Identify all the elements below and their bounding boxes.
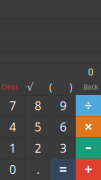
button[interactable]: Equals [50, 159, 76, 180]
staticText: 6 [60, 119, 67, 135]
button[interactable]: Clear [0, 79, 20, 95]
button[interactable]: 1 [0, 137, 25, 159]
staticText: Back [83, 83, 98, 91]
staticText: . [36, 161, 39, 177]
button[interactable]: Square root [20, 79, 40, 95]
button[interactable]: 4 [0, 116, 25, 137]
button[interactable]: 9 [50, 95, 76, 116]
staticText: 5 [34, 119, 41, 135]
button[interactable]: Subtract [76, 137, 101, 159]
button[interactable]: Multiply [76, 116, 101, 137]
staticText: √ [27, 81, 34, 93]
staticText: 3 [60, 140, 67, 156]
button[interactable]: Add [76, 159, 101, 180]
button[interactable]: 5 [25, 116, 50, 137]
staticText: 8 [34, 98, 41, 114]
button[interactable]: Back [81, 79, 101, 95]
staticText: ( [49, 80, 52, 94]
button[interactable]: 0 [0, 159, 25, 180]
staticText: 1 [9, 140, 16, 156]
button[interactable]: 7 [0, 95, 25, 116]
staticText: 4 [9, 119, 16, 135]
staticText: 0 [88, 66, 93, 78]
button[interactable]: Close parenthesis [61, 79, 81, 95]
button[interactable]: 8 [25, 95, 50, 116]
button[interactable]: Divide [76, 95, 101, 116]
button[interactable]: 3 [50, 137, 76, 159]
button[interactable]: 6 [50, 116, 76, 137]
staticText: 9 [60, 98, 67, 114]
staticText: Clear [1, 83, 18, 91]
button[interactable]: 2 [25, 137, 50, 159]
button[interactable]: . [25, 159, 50, 180]
button[interactable]: Open parenthesis [40, 79, 61, 95]
staticText: 2 [34, 140, 41, 156]
staticText: 0 [9, 161, 16, 177]
staticText: ) [69, 80, 72, 94]
staticText: 7 [9, 98, 16, 114]
